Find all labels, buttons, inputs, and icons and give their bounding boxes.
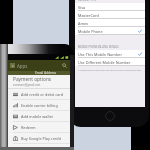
staticText: Amex (78, 21, 89, 26)
staticText: Enable carrier billing (21, 103, 58, 108)
staticText: MasterCard (78, 13, 99, 18)
staticText: Add mobile wallet (21, 114, 53, 119)
other: Home (105, 111, 115, 121)
staticText: A verification code may be sent to your … (78, 68, 142, 71)
staticText: Redeem (21, 125, 36, 130)
button[interactable]: MasterCard (75, 11, 145, 19)
staticText: Add credit or debit card (21, 92, 63, 97)
staticText: Buy Google Play credit (21, 136, 62, 141)
button[interactable]: Mobile Phone (75, 27, 145, 35)
button[interactable]: Redeem (8, 122, 70, 133)
staticText: Use This Mobile Number (78, 52, 122, 57)
staticText: Visa (78, 5, 86, 10)
staticText: Payment options (13, 76, 52, 83)
staticText: PAYMENT TYPE (78, 0, 97, 2)
button[interactable]: Visa (75, 3, 145, 11)
other: Search (62, 63, 67, 68)
staticText: Apps (17, 63, 28, 69)
button[interactable]: Enable carrier billing (8, 100, 70, 111)
button[interactable]: Use This Mobile Number (75, 50, 145, 58)
button[interactable]: Add credit or debit card (8, 89, 70, 100)
button[interactable]: Use Different Mobile Number (75, 58, 145, 66)
button[interactable]: Add mobile wallet (8, 111, 70, 122)
button[interactable]: Amex (75, 19, 145, 27)
staticText: Email Address (35, 71, 57, 75)
button[interactable]: Buy Google Play credit (8, 133, 70, 144)
staticText: MOBILE PHONE BILLING DETAILS (78, 45, 119, 49)
staticText: Mobile Phone (78, 29, 103, 34)
staticText: someone@gmail.com (13, 83, 41, 87)
staticText: Use Different Mobile Number (78, 60, 131, 65)
